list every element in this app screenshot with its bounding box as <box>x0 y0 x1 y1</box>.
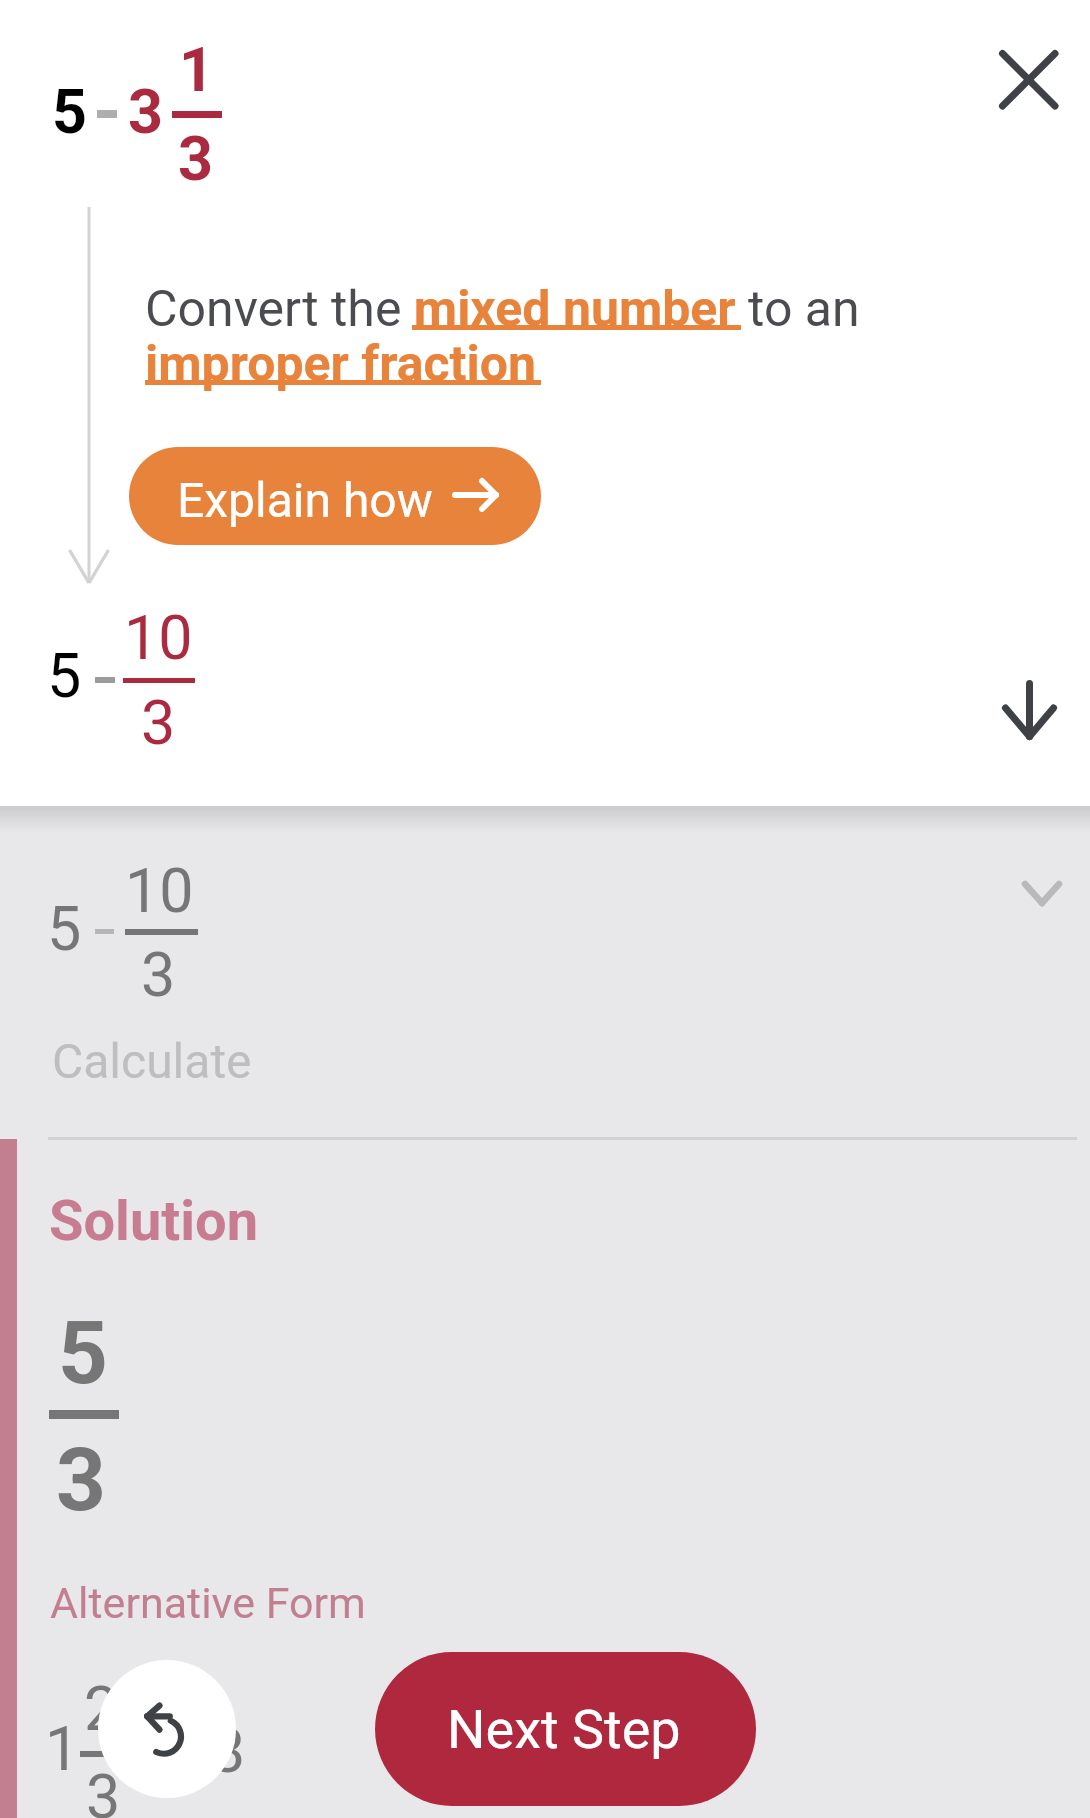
staticText: 1 <box>179 34 214 105</box>
button[interactable]: Explain how <box>129 447 541 545</box>
button[interactable]: Expand <box>992 843 1090 943</box>
staticText: 3 <box>128 76 163 147</box>
staticText: 10 <box>124 602 193 673</box>
staticText: 5 <box>58 1302 108 1404</box>
staticText: 5 <box>47 893 82 964</box>
staticText: Convert the mixed number to an improper … <box>145 280 885 393</box>
staticText: 5 <box>47 640 82 711</box>
staticText: 5 <box>52 76 87 147</box>
staticText: 10 <box>125 855 194 926</box>
staticText: Next Step <box>447 1698 681 1761</box>
button[interactable]: Next Step <box>375 1652 756 1806</box>
staticText: 3 <box>141 687 176 758</box>
staticText: 1 <box>45 1713 80 1784</box>
staticText: Solution <box>49 1188 259 1254</box>
button[interactable]: 5 minus 10 over 3, Calculate <box>0 832 1090 1132</box>
staticText: 3 <box>56 1429 106 1531</box>
button[interactable]: Close <box>976 27 1084 135</box>
staticText: 3 <box>211 1715 246 1786</box>
button[interactable]: Undo <box>98 1660 236 1798</box>
staticText: 2 <box>84 1673 119 1744</box>
staticText: Alternative Form <box>50 1578 366 1628</box>
button[interactable]: Solution 5 over 3 <box>0 1140 1090 1570</box>
staticText: 3 <box>178 123 213 194</box>
staticText: 3 <box>86 1761 121 1818</box>
staticText: Explain how <box>177 472 433 528</box>
staticText: 3 <box>141 939 176 1010</box>
button[interactable]: Scroll down <box>975 656 1083 764</box>
staticText: Calculate <box>52 1033 252 1089</box>
